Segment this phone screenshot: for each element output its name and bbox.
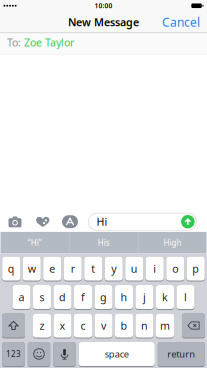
button[interactable]: t xyxy=(84,256,102,281)
staticText: u xyxy=(131,261,138,276)
button[interactable]: Hi xyxy=(88,213,197,231)
button[interactable]: p xyxy=(187,256,205,281)
button[interactable]: e xyxy=(43,256,61,281)
button[interactable] xyxy=(8,216,21,227)
staticText: Zoe Taylor xyxy=(21,35,74,49)
staticText: o xyxy=(172,261,178,276)
button[interactable] xyxy=(182,313,205,338)
button[interactable]: j xyxy=(135,285,153,310)
staticText: t xyxy=(91,261,95,276)
staticText: h xyxy=(120,290,127,304)
button[interactable]: “Hi” xyxy=(0,232,69,253)
button[interactable]: s xyxy=(33,285,51,310)
button[interactable] xyxy=(53,342,76,367)
staticText: “Hi” xyxy=(28,237,42,248)
staticText: r xyxy=(71,261,75,276)
button[interactable]: o xyxy=(166,256,184,281)
button[interactable]: m xyxy=(156,313,174,338)
staticText: Hi xyxy=(96,215,107,229)
button[interactable]: return xyxy=(158,342,205,367)
staticText: q xyxy=(8,261,15,276)
staticText: x xyxy=(59,318,65,333)
button[interactable]: a xyxy=(12,285,30,310)
staticText: His xyxy=(98,237,110,248)
button[interactable]: d xyxy=(53,285,71,310)
button[interactable]: z xyxy=(33,313,51,338)
staticText: f xyxy=(81,290,85,304)
staticText: 10:00 xyxy=(94,1,112,10)
button[interactable]: k xyxy=(156,285,174,310)
staticText: v xyxy=(101,318,106,333)
button[interactable] xyxy=(181,215,195,228)
staticText: j xyxy=(143,290,146,304)
button[interactable] xyxy=(62,215,78,228)
staticText: s xyxy=(39,290,44,304)
staticText: n xyxy=(141,318,148,333)
button[interactable] xyxy=(35,216,50,228)
staticText: z xyxy=(39,318,44,333)
button[interactable]: i xyxy=(146,256,164,281)
button[interactable] xyxy=(2,313,25,338)
staticText: w xyxy=(28,261,36,276)
button[interactable]: 123 xyxy=(2,342,25,367)
staticText: c xyxy=(80,318,85,333)
button[interactable]: q xyxy=(2,256,20,281)
staticText: p xyxy=(192,261,199,276)
button[interactable]: space xyxy=(79,342,155,367)
staticText: k xyxy=(162,290,168,304)
button[interactable]: r xyxy=(64,256,82,281)
button[interactable]: c xyxy=(74,313,92,338)
staticText: New Message xyxy=(68,15,139,29)
button[interactable]: w xyxy=(23,256,41,281)
staticText: d xyxy=(59,290,66,304)
button[interactable] xyxy=(28,342,50,367)
button[interactable]: x xyxy=(53,313,71,338)
button[interactable]: f xyxy=(74,285,92,310)
staticText: i xyxy=(153,261,156,276)
staticText: 123 xyxy=(6,349,21,359)
staticText: l xyxy=(184,290,187,304)
button[interactable]: l xyxy=(176,285,194,310)
button[interactable]: u xyxy=(125,256,143,281)
button[interactable]: h xyxy=(115,285,133,310)
button[interactable]: High xyxy=(138,232,206,253)
staticText: b xyxy=(120,318,127,333)
staticText: To: xyxy=(7,35,21,49)
button[interactable]: Cancel xyxy=(162,14,207,30)
button[interactable]: g xyxy=(94,285,112,310)
staticText: g xyxy=(100,290,107,304)
button[interactable]: y xyxy=(105,256,123,281)
staticText: m xyxy=(160,318,170,333)
button[interactable]: n xyxy=(135,313,153,338)
staticText: space xyxy=(105,348,129,360)
staticText: e xyxy=(49,261,55,276)
staticText: High xyxy=(163,237,181,248)
button[interactable]: v xyxy=(94,313,112,338)
staticText: return xyxy=(167,348,195,360)
button[interactable]: To: xyxy=(0,33,207,54)
button[interactable]: His xyxy=(70,232,138,253)
staticText: Cancel xyxy=(162,14,200,30)
staticText: a xyxy=(18,290,24,304)
button[interactable]: b xyxy=(115,313,133,338)
staticText: y xyxy=(111,261,116,276)
